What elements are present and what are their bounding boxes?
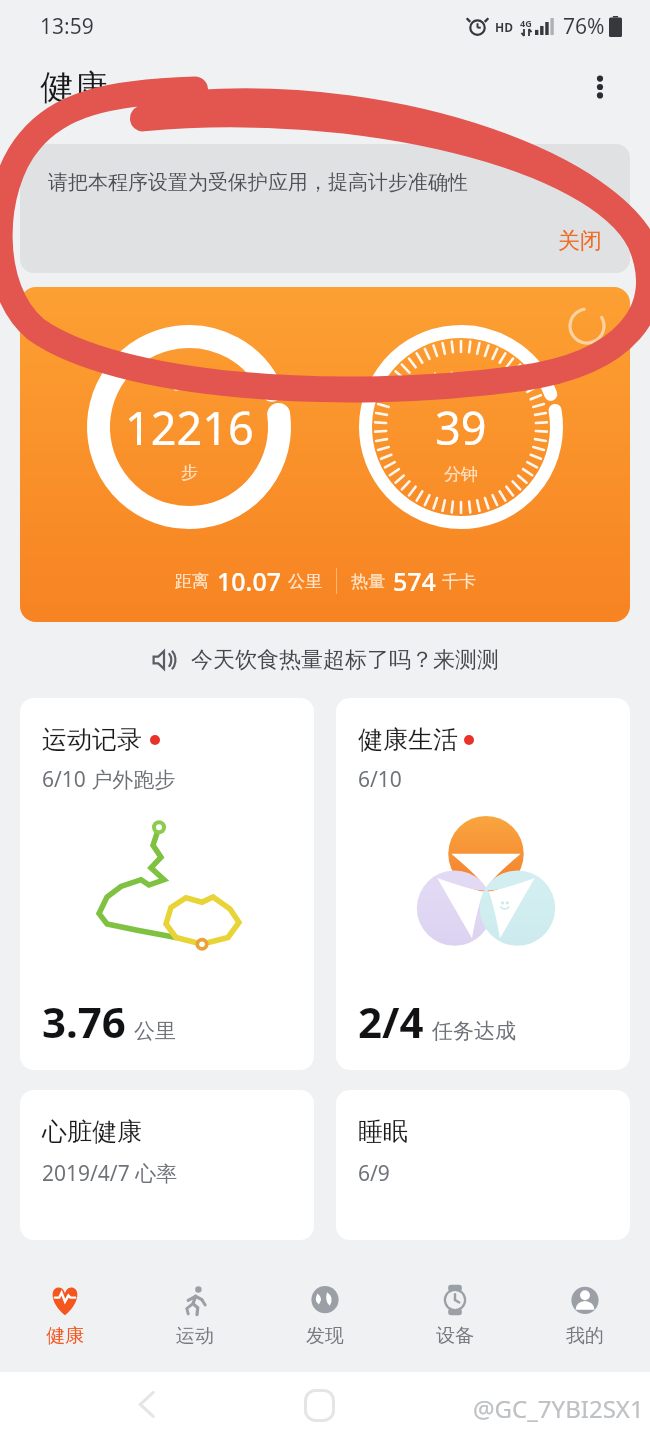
staticText: 步 [181,462,198,483]
staticText: 睡眠 [358,1116,408,1147]
button[interactable]: 运动记录 [20,698,314,1070]
button[interactable]: 心脏健康 [20,1090,314,1240]
button[interactable]: 睡眠 [336,1090,630,1240]
staticText: @GC_7YBI2SX1 [473,1392,644,1425]
staticText: 热量 [351,571,385,592]
staticText: 运动记录 [42,724,142,755]
staticText: 4G [520,17,532,29]
staticText: 13:59 [40,12,94,41]
staticText: 公里 [134,1018,176,1044]
staticText: 距离 [175,571,209,592]
staticText: 关闭 [558,227,602,255]
staticText: 健康 [40,66,108,109]
staticText: 公里 [288,571,322,592]
button[interactable]: 我的 [520,1270,650,1372]
staticText: 健康生活 [358,724,458,755]
staticText: 步数 [173,372,207,393]
staticText: 6/10 [358,765,402,794]
staticText: 今天饮食热量超标了吗？来测测 [191,646,499,674]
button[interactable]: 发现 [260,1270,390,1372]
staticText: 任务达成 [432,1018,516,1044]
staticText: 设备 [436,1324,474,1348]
button[interactable]: 今天饮食热量超标了吗？来测测 [0,640,650,680]
staticText: 6/9 [358,1159,390,1188]
staticText: 10.07 [217,564,282,598]
button[interactable]: 运动 [130,1270,260,1372]
staticText: 574 [393,564,436,598]
button[interactable]: 步数 [20,287,630,622]
button[interactable]: More options [572,59,628,115]
staticText: 健康 [46,1324,84,1348]
staticText: 6/10 户外跑步 [42,765,176,794]
staticText: 请把本程序设置为受保护应用，提高计步准确性 [48,170,468,195]
staticText: 心脏健康 [42,1116,142,1147]
staticText: 中高强度 [427,370,495,391]
staticText: 我的 [566,1324,604,1348]
button[interactable]: 设备 [390,1270,520,1372]
staticText: 运动 [176,1324,214,1348]
button[interactable]: 健康生活 [336,698,630,1070]
button[interactable]: 关闭 [530,221,630,261]
staticText: 76% [563,12,605,41]
staticText: 12216 [125,397,254,458]
staticText: 2/4 [358,993,424,1050]
staticText: 千卡 [442,571,476,592]
button[interactable]: 健康 [0,1270,130,1372]
staticText: 39 [435,397,487,458]
staticText: HD [495,19,513,35]
staticText: 发现 [306,1324,344,1348]
staticText: 分钟 [444,464,478,485]
staticText: 3.76 [42,993,126,1050]
staticText: 2019/4/7 心率 [42,1159,178,1188]
